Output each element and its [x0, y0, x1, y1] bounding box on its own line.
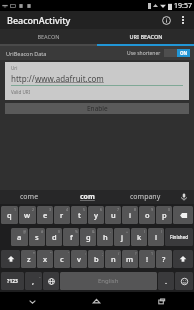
staticText: f — [70, 232, 73, 242]
button[interactable]: v — [71, 250, 87, 268]
staticText: 19:57 — [174, 1, 192, 11]
button[interactable]: Emoji — [175, 272, 193, 290]
staticText: 7 — [117, 207, 120, 212]
staticText: ) — [161, 229, 163, 234]
button[interactable]: f — [63, 228, 79, 246]
staticText: Use shortener — [127, 50, 161, 57]
button[interactable]: ?123 — [1, 272, 24, 290]
button[interactable]: Recent apps — [129, 292, 194, 310]
button[interactable]: p — [156, 206, 172, 224]
staticText: ?123 — [7, 278, 18, 285]
staticText: come — [20, 192, 39, 202]
staticText: i — [129, 210, 132, 220]
staticText: # — [41, 229, 44, 234]
staticText: 0 — [168, 207, 171, 212]
staticText: 4 — [66, 207, 69, 212]
staticText: ; — [102, 251, 103, 256]
staticText: BeaconActivity — [7, 14, 71, 26]
button[interactable]: a — [11, 228, 28, 246]
staticText: 1 — [14, 207, 17, 212]
staticText: _ — [39, 273, 41, 278]
staticText: ' — [68, 251, 69, 256]
staticText: 3 — [49, 207, 52, 212]
button[interactable]: ! — [139, 250, 155, 268]
staticText: " — [50, 251, 52, 256]
button[interactable]: y — [88, 206, 104, 224]
button[interactable]: t — [71, 206, 87, 224]
button[interactable]: Shift — [173, 250, 193, 268]
button[interactable]: i — [122, 206, 138, 224]
button[interactable]: , — [25, 272, 42, 290]
button[interactable]: e — [37, 206, 53, 224]
button[interactable]: n — [105, 250, 121, 268]
staticText: 2 — [32, 207, 35, 212]
button[interactable]: u — [105, 206, 121, 224]
staticText: y — [94, 210, 98, 220]
staticText: e — [43, 210, 48, 220]
button[interactable]: h — [97, 228, 113, 246]
staticText: + — [126, 229, 129, 234]
staticText: t — [78, 210, 81, 220]
button[interactable]: ? — [156, 250, 172, 268]
button[interactable]: Finished — [165, 228, 193, 246]
staticText: BEACON — [37, 33, 60, 40]
staticText: a — [17, 232, 22, 242]
staticText: u — [111, 210, 116, 220]
button[interactable]: Home — [64, 292, 129, 310]
staticText: % — [75, 229, 78, 234]
staticText: - — [110, 229, 112, 234]
button[interactable]: l — [148, 228, 164, 246]
button[interactable]: z — [21, 250, 36, 268]
button[interactable]: Change language — [43, 272, 59, 290]
button[interactable]: d — [46, 228, 62, 246]
staticText: , — [32, 276, 35, 286]
staticText: Uri — [11, 65, 18, 71]
button[interactable]: o — [139, 206, 155, 224]
staticText: m — [126, 254, 134, 264]
staticText: / — [118, 251, 120, 256]
staticText: $ — [58, 229, 61, 234]
button[interactable]: com — [58, 190, 116, 204]
button[interactable]: c — [54, 250, 70, 268]
staticText: ? — [135, 251, 137, 256]
button[interactable]: Info — [157, 11, 175, 29]
button[interactable]: URI BEACON — [97, 29, 194, 44]
staticText: : — [85, 251, 86, 256]
staticText: UriBeacon Data — [6, 50, 47, 57]
button[interactable]: s — [29, 228, 45, 246]
button[interactable]: More options — [175, 12, 191, 28]
button[interactable]: j — [114, 228, 130, 246]
button[interactable]: Enable — [5, 103, 189, 114]
staticText: 5 — [83, 207, 86, 212]
button[interactable]: Voice input — [174, 190, 194, 204]
staticText: h — [103, 232, 108, 242]
button[interactable]: m — [122, 250, 138, 268]
button[interactable]: x — [37, 250, 53, 268]
staticText: Valid URI — [11, 89, 31, 95]
button[interactable]: q — [1, 206, 18, 224]
staticText: www.adafruit.com — [35, 73, 104, 84]
button[interactable]: g — [80, 228, 96, 246]
staticText: & — [92, 229, 95, 234]
staticText: l — [155, 232, 158, 242]
button[interactable]: company — [116, 190, 174, 204]
button[interactable]: Use shortener — [127, 49, 190, 57]
button[interactable]: Space — [60, 272, 157, 290]
button[interactable]: b — [88, 250, 104, 268]
button[interactable]: . — [158, 272, 174, 290]
staticText: o — [145, 210, 150, 220]
button[interactable]: Hide keyboard — [0, 292, 64, 310]
staticText: Enable — [87, 104, 108, 113]
staticText: com — [80, 192, 95, 202]
staticText: . — [165, 276, 168, 286]
button[interactable]: k — [131, 228, 147, 246]
button[interactable]: r — [54, 206, 70, 224]
button[interactable]: BEACON — [0, 29, 97, 44]
staticText: v — [77, 254, 81, 264]
staticText: j — [121, 232, 124, 242]
button[interactable]: w — [19, 206, 36, 224]
button[interactable]: Shift — [1, 250, 20, 268]
button[interactable]: Backspace — [173, 206, 193, 224]
staticText: q — [7, 210, 12, 220]
button[interactable]: come — [0, 190, 58, 204]
